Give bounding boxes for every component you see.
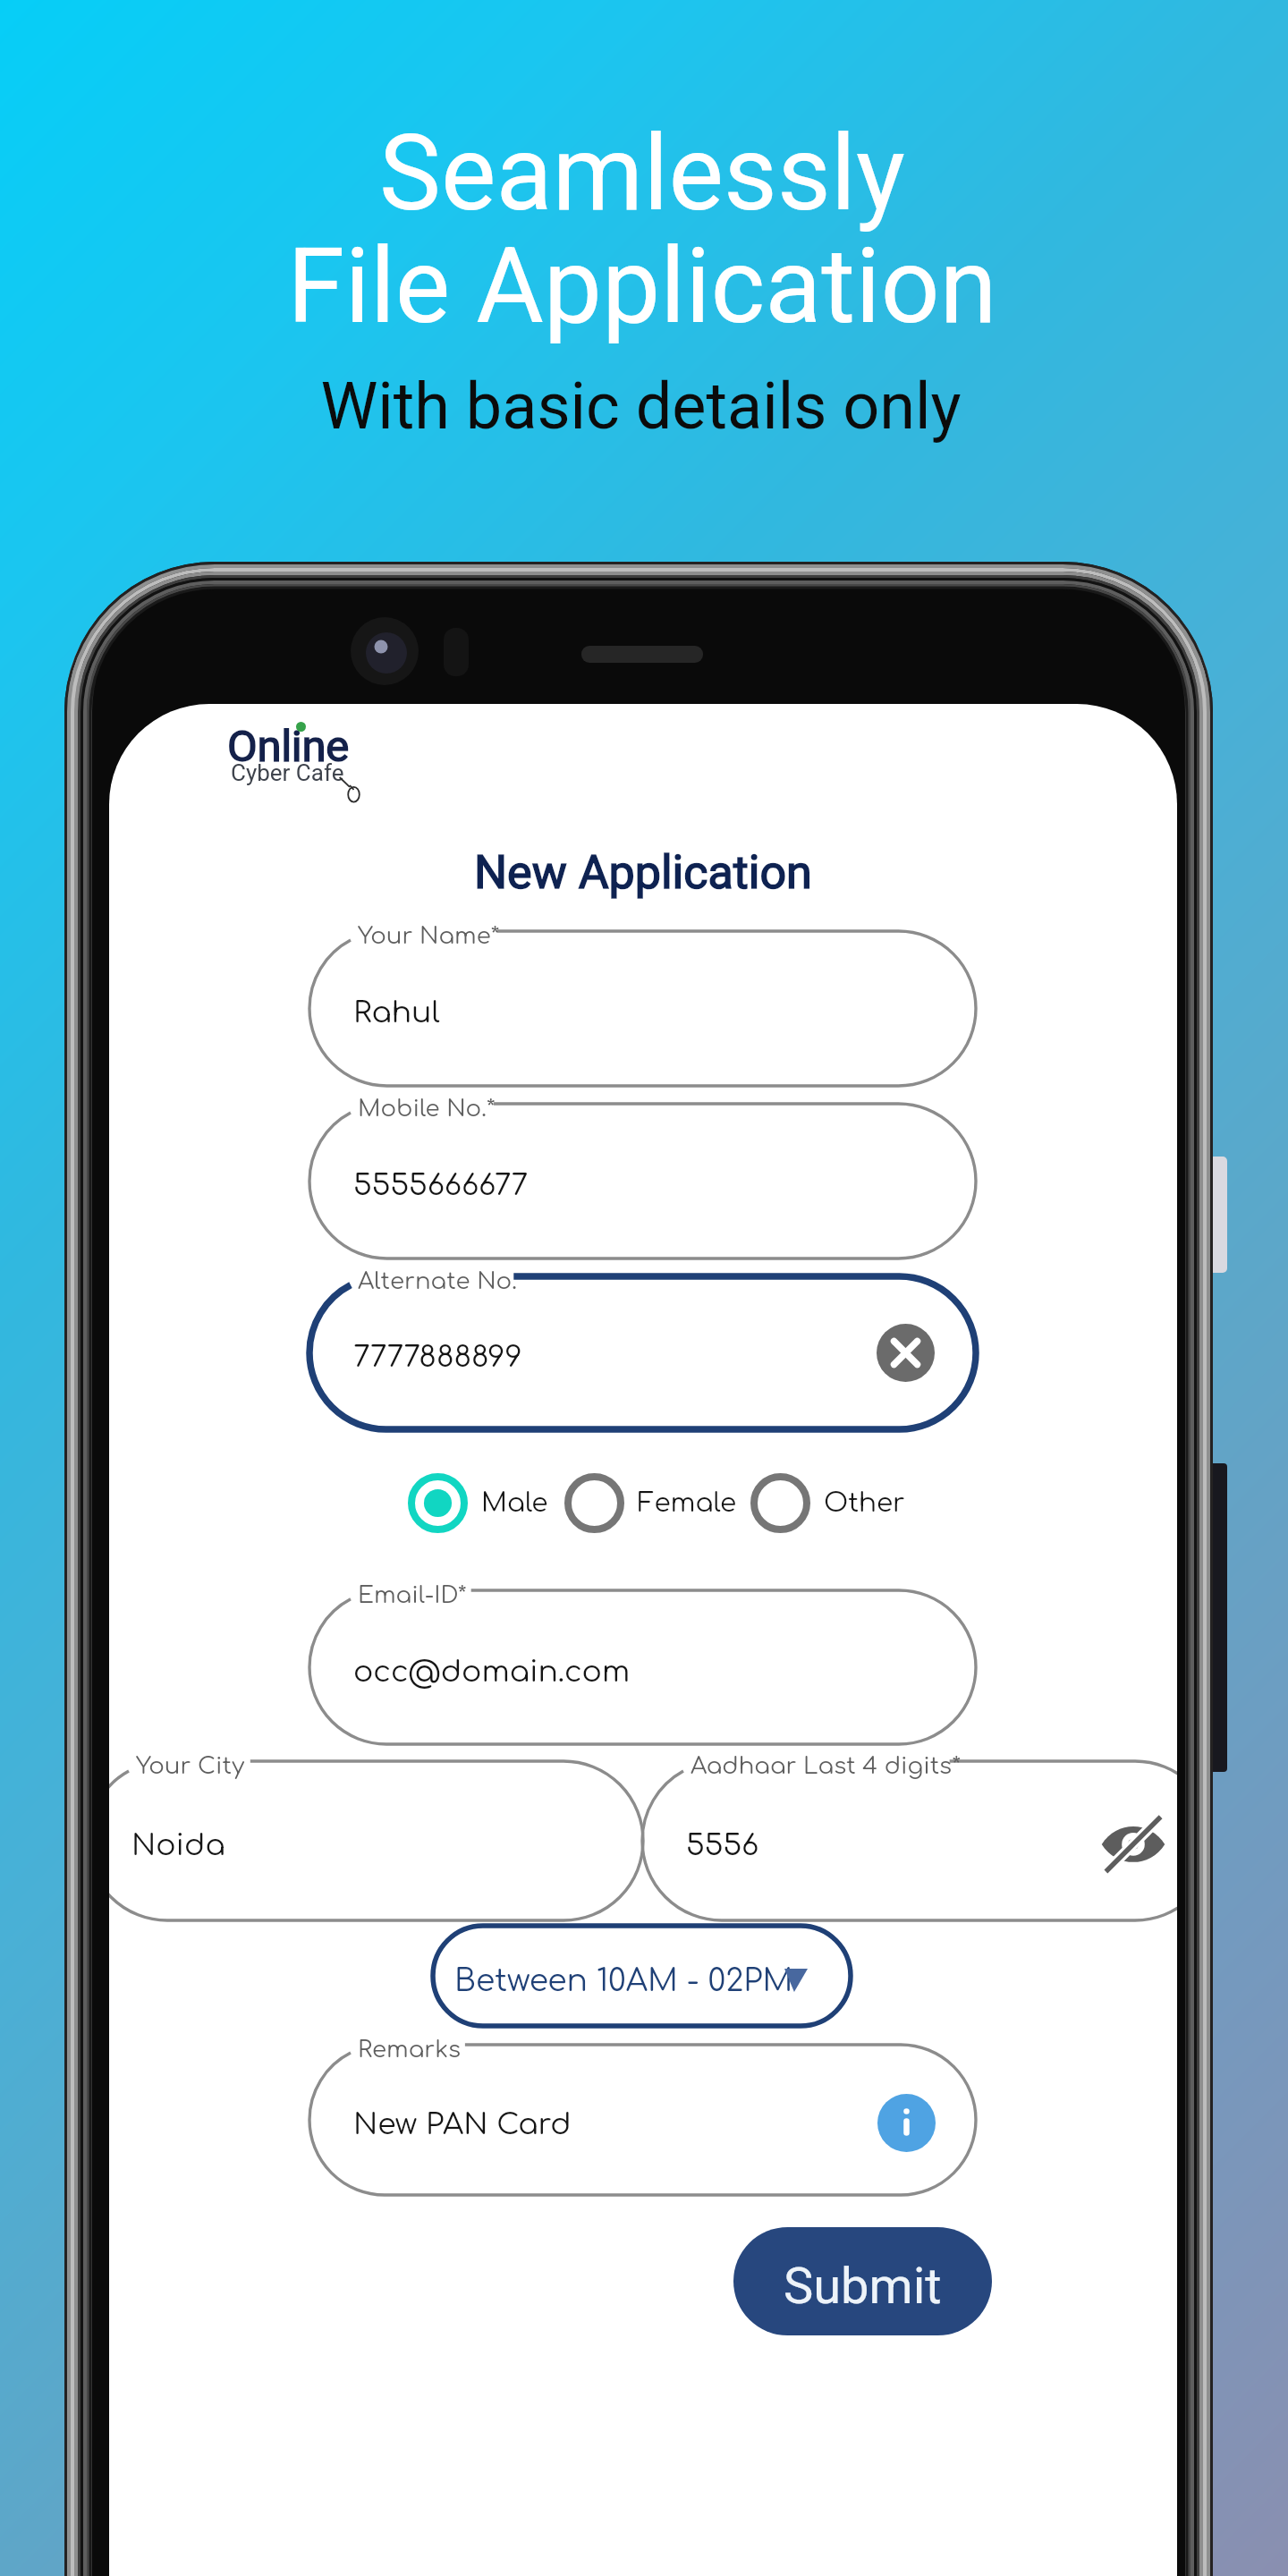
staticText: New Application	[474, 845, 812, 900]
staticText: Submit	[784, 2257, 942, 2316]
button[interactable]: Remarks	[309, 2045, 976, 2195]
button[interactable]: Between 10AM - 02PM	[433, 1926, 851, 2026]
staticText: 7777888899	[353, 1341, 522, 1374]
button[interactable]: Online	[226, 721, 405, 807]
staticText: Your Name*	[358, 923, 500, 949]
button[interactable]: Your Name*	[309, 931, 976, 1086]
staticText: Remarks	[358, 2037, 462, 2063]
staticText: Mobile No.*	[358, 1096, 496, 1122]
button[interactable]: Your City	[109, 1761, 643, 1920]
staticText: Your City	[136, 1753, 245, 1779]
staticText: Male	[481, 1488, 548, 1518]
button[interactable]: Submit	[733, 2227, 992, 2335]
staticText: Alternate No.	[358, 1268, 517, 1294]
staticText: 5556	[686, 1829, 759, 1862]
staticText: Email-ID*	[358, 1582, 467, 1608]
button[interactable]: Mobile No.*	[309, 1104, 976, 1258]
button[interactable]: Alternate No.	[309, 1276, 976, 1429]
staticText: Seamlessly File Application	[287, 113, 997, 347]
button[interactable]: Hide value	[1101, 1809, 1165, 1874]
staticText: Aadhaar Last 4 digits*	[691, 1753, 962, 1779]
staticText: Cyber Cafe	[231, 759, 344, 786]
button[interactable]: Clear text	[877, 1324, 935, 1382]
button[interactable]: Option	[750, 1473, 810, 1533]
staticText: New PAN Card	[353, 2108, 572, 2141]
staticText: 5555666677	[353, 1169, 529, 1202]
staticText: Online	[227, 721, 349, 772]
button[interactable]: Aadhaar Last 4 digits*	[642, 1761, 1177, 1920]
staticText: With basic details only	[320, 369, 962, 444]
button[interactable]: Option	[564, 1473, 624, 1533]
staticText: occ@domain.com	[353, 1656, 631, 1689]
staticText: Other	[824, 1488, 905, 1518]
staticText: Rahul	[353, 996, 440, 1030]
button[interactable]: Email-ID*	[309, 1590, 976, 1744]
button[interactable]: More information	[877, 2094, 936, 2152]
button[interactable]: Selected option	[408, 1473, 468, 1533]
staticText: Between 10AM - 02PM	[454, 1964, 793, 1998]
staticText: Noida	[131, 1829, 225, 1862]
staticText: Female	[638, 1488, 737, 1518]
